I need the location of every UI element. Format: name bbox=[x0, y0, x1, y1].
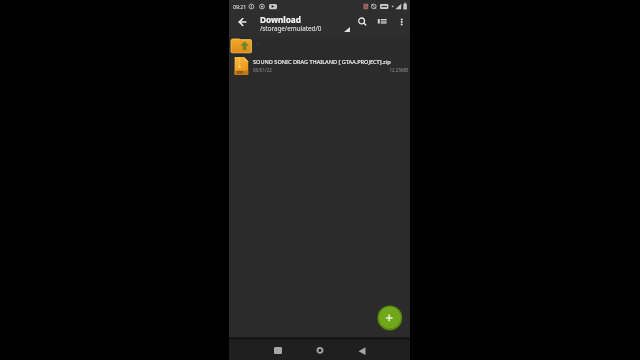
button[interactable]: .. bbox=[229, 37, 410, 55]
button[interactable] bbox=[357, 346, 367, 356]
button[interactable] bbox=[236, 13, 252, 30]
staticText: /storage/emulated/0 bbox=[260, 24, 322, 33]
staticText: 12.25MB bbox=[368, 67, 408, 73]
button[interactable] bbox=[354, 13, 370, 30]
staticText: SOUND SONIC DRAG THAILAND [ GTAA.PROJECT… bbox=[253, 58, 405, 66]
staticText: 06/01/22 bbox=[253, 67, 272, 73]
button[interactable] bbox=[395, 14, 407, 30]
button[interactable] bbox=[274, 347, 282, 354]
staticText: 09:21 bbox=[233, 3, 247, 10]
staticText: .. bbox=[256, 39, 260, 47]
button[interactable] bbox=[315, 345, 325, 355]
button[interactable] bbox=[375, 14, 389, 28]
button[interactable] bbox=[377, 305, 403, 331]
staticText: ZIP bbox=[237, 70, 244, 75]
staticText: Download bbox=[260, 14, 301, 25]
button[interactable]: ZIP bbox=[229, 54, 410, 77]
